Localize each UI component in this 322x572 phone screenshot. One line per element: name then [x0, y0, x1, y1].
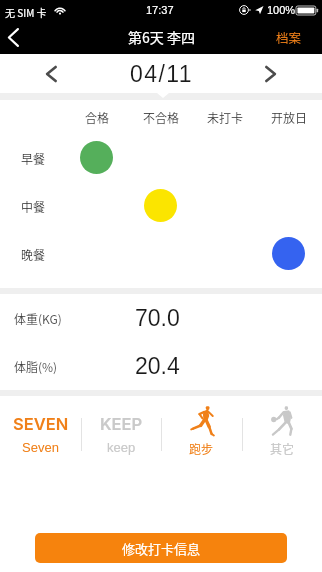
button[interactable]: 跑步 — [161, 396, 242, 464]
button[interactable]: 其它 — [242, 396, 322, 464]
staticText: 17:37 — [146, 4, 174, 16]
staticText: 晚餐 — [21, 246, 46, 263]
staticText: 20.4 — [135, 353, 180, 379]
staticText: 档案 — [276, 28, 302, 46]
staticText: SEVEN — [13, 414, 69, 434]
staticText: 其它 — [270, 440, 295, 457]
staticText: 中餐 — [21, 198, 46, 215]
button[interactable]: 修改打卡信息 — [35, 533, 287, 563]
button[interactable]: Previous day — [24, 54, 79, 93]
button[interactable]: SEVEN — [0, 396, 81, 464]
staticText: 04/11 — [130, 61, 193, 87]
staticText: 70.0 — [135, 305, 180, 331]
staticText: KEEP — [100, 414, 143, 434]
staticText: 100% — [267, 4, 296, 16]
button[interactable]: 早餐 — [80, 141, 113, 174]
staticText: 未打卡 — [207, 109, 244, 126]
staticText: 不合格 — [143, 109, 180, 126]
staticText: 开放日 — [271, 109, 308, 126]
button[interactable]: 档案 — [256, 20, 322, 54]
staticText: 合格 — [85, 109, 110, 126]
button[interactable]: KEEP — [81, 396, 162, 464]
staticText: 跑步 — [189, 440, 214, 457]
staticText: 体脂(%) — [14, 358, 58, 375]
staticText: 修改打卡信息 — [122, 539, 201, 558]
staticText: Seven — [22, 440, 59, 455]
staticText: keep — [107, 440, 136, 455]
staticText: 第6天 李四 — [128, 27, 195, 47]
button[interactable]: Next day — [243, 54, 298, 93]
staticText: 体重(KG) — [14, 310, 62, 327]
button[interactable]: 晚餐 — [272, 237, 305, 270]
staticText: 无 SIM 卡 — [5, 5, 47, 19]
staticText: 早餐 — [21, 150, 46, 167]
button[interactable]: Back — [0, 20, 34, 54]
button[interactable]: 中餐 — [144, 189, 177, 222]
